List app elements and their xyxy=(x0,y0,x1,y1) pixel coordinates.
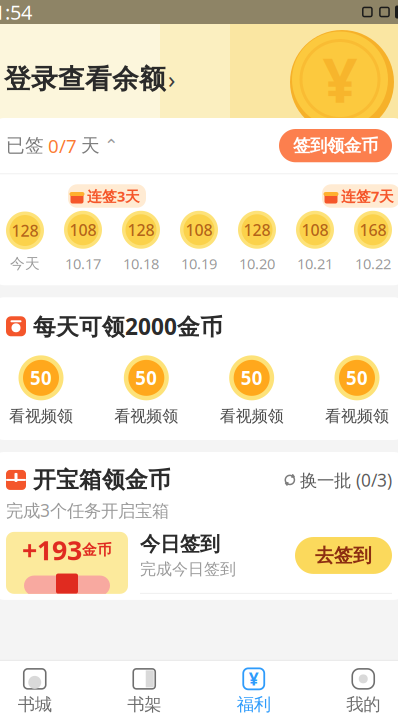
staticText: 128 xyxy=(11,220,38,241)
staticText: ¥ xyxy=(249,667,259,690)
staticText: 天 xyxy=(81,134,100,157)
button[interactable]: ¥ xyxy=(199,661,308,721)
staticText: 128 xyxy=(243,219,270,240)
staticText: 10.18 xyxy=(123,254,159,273)
staticText: ⌃ xyxy=(104,136,119,155)
staticText: 50 xyxy=(241,365,263,390)
staticText: 看视频领 xyxy=(325,406,389,426)
button[interactable]: 50 xyxy=(113,355,179,426)
button[interactable]: 50 xyxy=(219,355,285,426)
staticText: 完成3个任务开启宝箱 xyxy=(6,499,169,522)
staticText: 今天 xyxy=(10,254,40,272)
staticText: 换一批 (0/3) xyxy=(300,468,392,491)
staticText: 10.20 xyxy=(239,254,275,273)
button[interactable]: 50 xyxy=(8,355,74,426)
staticText: 看视频领 xyxy=(9,406,73,426)
staticText: 128 xyxy=(127,219,154,240)
staticText: +193 xyxy=(22,532,82,568)
staticText: 1:54 xyxy=(0,0,32,25)
staticText: 去签到 xyxy=(315,544,372,567)
staticText: 10.22 xyxy=(355,254,391,273)
staticText: 108 xyxy=(301,219,328,240)
staticText: 书城 xyxy=(18,694,52,715)
button[interactable]: 书城 xyxy=(0,661,89,721)
staticText: ¥ xyxy=(322,38,357,120)
staticText: 108 xyxy=(185,219,212,240)
staticText: 10.21 xyxy=(297,254,333,273)
button[interactable]: 已签 xyxy=(0,118,398,173)
staticText: 看视频领 xyxy=(220,406,284,426)
staticText: 0/7 xyxy=(48,133,77,158)
staticText: › xyxy=(168,63,175,95)
staticText: 50 xyxy=(135,365,157,390)
staticText: 金币 xyxy=(82,541,112,559)
button[interactable]: 登录查看余额 xyxy=(4,63,175,95)
staticText: 书架 xyxy=(127,694,161,715)
staticText: 签到领金币 xyxy=(293,135,378,156)
staticText: 108 xyxy=(69,219,96,240)
staticText: 看视频领 xyxy=(114,406,178,426)
staticText: 今日签到 xyxy=(140,532,220,556)
staticText: 已签 xyxy=(6,134,44,157)
staticText: 连签7天 xyxy=(341,186,394,206)
staticText: 连签3天 xyxy=(87,186,140,206)
button[interactable]: 去签到 xyxy=(295,537,392,574)
staticText: 50 xyxy=(30,365,52,390)
staticText: 完成今日签到 xyxy=(140,559,236,579)
button[interactable]: 书架 xyxy=(89,661,199,721)
staticText: 10.19 xyxy=(181,254,217,273)
staticText: 10.17 xyxy=(65,254,101,273)
staticText: 登录查看余额 xyxy=(4,63,166,95)
staticText: 168 xyxy=(359,219,386,240)
staticText: 50 xyxy=(346,365,368,390)
button[interactable]: 50 xyxy=(324,355,390,426)
staticText: 每天可领2000金币 xyxy=(33,311,223,341)
staticText: 开宝箱领金币 xyxy=(33,466,171,494)
staticText: 福利 xyxy=(237,694,271,715)
button[interactable]: 换一批 (0/3) xyxy=(283,468,392,491)
button[interactable]: 我的 xyxy=(308,661,398,721)
staticText: 我的 xyxy=(346,694,380,715)
